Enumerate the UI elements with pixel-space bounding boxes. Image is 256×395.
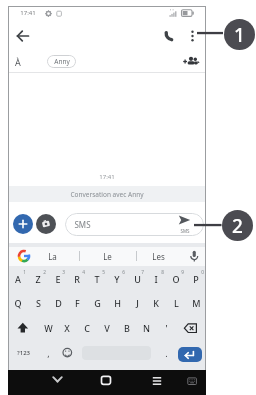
button[interactable]: M [186, 293, 206, 313]
button[interactable]: X [57, 318, 77, 338]
button[interactable]: Q [8, 293, 28, 313]
staticText: Anny [54, 57, 70, 66]
button[interactable]: D [48, 293, 68, 313]
button[interactable] [47, 55, 76, 68]
button[interactable]: O [166, 269, 186, 289]
staticText: C [84, 322, 90, 334]
staticText: K [153, 297, 159, 309]
staticText: V [104, 322, 110, 334]
staticText: R [74, 273, 80, 285]
button[interactable] [13, 214, 33, 234]
staticText: , [47, 347, 50, 359]
staticText: M [192, 297, 201, 309]
staticText: T [94, 273, 100, 285]
button[interactable]: ' [156, 318, 176, 338]
button[interactable]: J [127, 293, 147, 313]
staticText: Z [35, 273, 41, 285]
button[interactable] [174, 211, 198, 233]
staticText: 1 [23, 269, 26, 276]
staticText: Y [114, 273, 120, 285]
staticText: O [172, 273, 180, 285]
button[interactable]: F [67, 293, 87, 313]
button[interactable]: ?123 [8, 343, 38, 363]
button[interactable] [65, 213, 204, 236]
button[interactable]: I [146, 269, 166, 289]
staticText: 0 [201, 269, 204, 276]
staticText: A [15, 273, 21, 285]
staticText: E [55, 273, 61, 285]
staticText: Le [103, 251, 112, 262]
staticText: H [114, 297, 121, 309]
staticText: 5 [102, 269, 105, 276]
staticText: X [64, 322, 70, 334]
staticText: Q [14, 297, 22, 309]
button[interactable]: L [166, 293, 186, 313]
staticText: À [15, 56, 21, 68]
button[interactable] [14, 27, 32, 45]
staticText: SMS [74, 219, 91, 230]
button[interactable]: U [127, 269, 147, 289]
button[interactable]: . [156, 343, 176, 363]
staticText: L [174, 297, 179, 309]
staticText: 2 [43, 269, 46, 276]
button[interactable] [161, 27, 179, 45]
button[interactable]: S [28, 293, 48, 313]
button[interactable]: P [186, 269, 206, 289]
staticText: G [94, 297, 101, 309]
button[interactable]: V [97, 318, 117, 338]
button[interactable]: B [117, 318, 137, 338]
staticText: S [36, 297, 41, 309]
staticText: 3 [62, 269, 65, 276]
button[interactable] [182, 370, 202, 395]
staticText: W [44, 322, 53, 334]
button[interactable] [181, 52, 200, 71]
staticText: 9 [181, 269, 184, 276]
staticText: ' [165, 322, 168, 334]
staticText: Les [152, 251, 165, 262]
button[interactable] [185, 27, 200, 45]
button[interactable]: Le [95, 248, 119, 264]
staticText: P [193, 273, 199, 285]
staticText: B [124, 322, 130, 334]
staticText: 1 [234, 22, 245, 48]
button[interactable]: A [8, 269, 28, 289]
staticText: . [165, 347, 168, 359]
staticText: N [143, 322, 150, 334]
button[interactable]: La [40, 248, 64, 264]
button[interactable]: K [146, 293, 166, 313]
staticText: Conversation avec Anny [70, 190, 144, 199]
staticText: 2 [232, 213, 243, 239]
button[interactable] [145, 370, 169, 395]
staticText: 8 [161, 269, 164, 276]
button[interactable]: T [87, 269, 107, 289]
staticText: La [48, 251, 57, 262]
button[interactable]: N [136, 318, 156, 338]
staticText: J [136, 297, 139, 309]
staticText: 4 [82, 269, 85, 276]
button[interactable]: R [67, 269, 87, 289]
button[interactable]: E [48, 269, 68, 289]
button[interactable] [36, 214, 56, 234]
button[interactable]: G [87, 293, 107, 313]
button[interactable]: W [38, 318, 58, 338]
button[interactable]: , [38, 343, 58, 363]
button[interactable]: Les [146, 248, 170, 264]
staticText: F [75, 297, 80, 309]
staticText: 17:41 [20, 9, 36, 17]
button[interactable]: H [107, 293, 127, 313]
staticText: I [154, 273, 158, 285]
button[interactable]: C [77, 318, 97, 338]
button[interactable] [46, 370, 70, 395]
staticText: 6 [122, 269, 125, 276]
staticText: D [55, 297, 62, 309]
staticText: SMS [180, 228, 190, 234]
button[interactable] [178, 347, 202, 362]
button[interactable]: Y [107, 269, 127, 289]
staticText: ?123 [17, 349, 30, 357]
staticText: U [134, 273, 141, 285]
staticText: 17:41 [99, 173, 115, 181]
button[interactable] [94, 370, 118, 395]
button[interactable]: Z [28, 269, 48, 289]
staticText: 7 [141, 269, 144, 276]
